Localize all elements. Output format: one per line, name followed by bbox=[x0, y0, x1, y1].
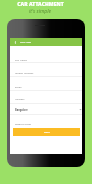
button[interactable] bbox=[10, 77, 82, 90]
staticText: Address bbox=[15, 97, 25, 100]
staticText: Full Name bbox=[15, 58, 27, 61]
button[interactable] bbox=[10, 90, 82, 103]
staticText: Mobile Number bbox=[15, 71, 34, 74]
staticText: it's simple bbox=[29, 8, 51, 15]
button[interactable] bbox=[10, 101, 82, 114]
staticText: Bangalore bbox=[15, 108, 28, 111]
button[interactable]: Select city bbox=[79, 108, 82, 111]
staticText: Email bbox=[15, 85, 22, 88]
staticText: NEXT bbox=[44, 131, 50, 134]
staticText: CAR ATTACHMENT bbox=[17, 1, 64, 8]
button[interactable]: Back bbox=[10, 38, 20, 46]
button[interactable] bbox=[10, 49, 82, 62]
staticText: OPTA Cabs bbox=[20, 41, 32, 44]
button[interactable] bbox=[10, 63, 82, 76]
button[interactable]: NEXT bbox=[13, 128, 80, 136]
staticText: Referral Code bbox=[15, 122, 31, 125]
button[interactable] bbox=[10, 38, 82, 52]
